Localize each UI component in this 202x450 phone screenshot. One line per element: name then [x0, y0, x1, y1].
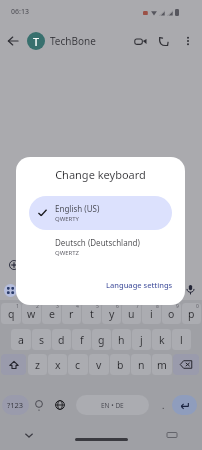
staticText: c	[75, 358, 81, 372]
button[interactable]: c	[68, 354, 88, 375]
button[interactable]: Apps	[4, 284, 17, 297]
staticText: .	[162, 399, 165, 411]
button[interactable]: j	[132, 329, 151, 350]
button[interactable]: i	[142, 303, 161, 324]
button[interactable]: r	[62, 303, 81, 324]
staticText: z	[35, 358, 40, 372]
button[interactable]: l	[172, 329, 191, 350]
button[interactable]: d	[52, 329, 71, 350]
staticText: 4	[76, 303, 79, 310]
button[interactable]: h	[112, 329, 131, 350]
staticText: m	[157, 358, 167, 372]
button[interactable]: k	[152, 329, 171, 350]
button[interactable]: w	[22, 303, 41, 324]
staticText: QWERTZ	[55, 249, 80, 257]
staticText: 7	[136, 303, 139, 310]
staticText: 9	[176, 303, 179, 310]
button[interactable]: Change keyboard	[51, 395, 69, 415]
staticText: 1	[16, 303, 19, 310]
button[interactable]: Back	[0, 28, 26, 54]
button[interactable]: Emoji	[30, 395, 47, 415]
button[interactable]: n	[131, 354, 151, 375]
staticText: QWERTY	[55, 215, 80, 223]
staticText: i	[150, 307, 153, 321]
staticText: t	[90, 307, 94, 321]
staticText: p	[188, 307, 195, 321]
staticText: 06:13	[11, 7, 29, 17]
staticText: d	[58, 333, 65, 347]
staticText: 5	[96, 303, 99, 310]
button[interactable]: e	[42, 303, 61, 324]
button[interactable]: ?123	[2, 395, 29, 415]
button[interactable]: Switch keyboard	[167, 430, 177, 440]
staticText: h	[118, 333, 125, 347]
button[interactable]: Video call	[128, 29, 152, 53]
staticText: Change keyboard	[16, 167, 185, 182]
button[interactable]: u	[122, 303, 141, 324]
staticText: y	[109, 307, 115, 321]
button[interactable]: s	[32, 329, 51, 350]
button[interactable]: v	[89, 354, 109, 375]
staticText: j	[140, 333, 143, 347]
staticText: o	[168, 307, 175, 321]
staticText: 6	[116, 303, 119, 310]
button[interactable]: Deutsch (Deutschland)	[29, 230, 172, 264]
staticText: 3	[56, 303, 59, 310]
button[interactable]: g	[92, 329, 111, 350]
button[interactable]: Hide keyboard	[23, 429, 35, 441]
staticText: g	[98, 333, 105, 347]
staticText: Deutsch (Deutschland)	[55, 237, 140, 248]
staticText: q	[8, 307, 15, 321]
staticText: n	[138, 358, 145, 372]
button[interactable]: EN • DE	[76, 395, 149, 415]
button[interactable]: Backspace	[173, 354, 199, 375]
button[interactable]: Shift	[1, 354, 26, 375]
staticText: f	[80, 333, 84, 347]
button[interactable]: Enter	[172, 395, 197, 415]
staticText: TechBone	[50, 34, 96, 48]
staticText: x	[55, 358, 61, 372]
staticText: Language settings	[106, 280, 173, 290]
button[interactable]: f	[72, 329, 91, 350]
staticText: v	[96, 358, 102, 372]
staticText: ?123	[7, 400, 24, 410]
button[interactable]: a	[11, 329, 31, 350]
staticText: s	[39, 333, 45, 347]
staticText: b	[117, 358, 124, 372]
button[interactable]: t	[82, 303, 101, 324]
staticText: l	[180, 333, 183, 347]
staticText: 2	[36, 303, 39, 310]
staticText: T	[33, 34, 40, 49]
button[interactable]: Call	[152, 29, 176, 53]
button[interactable]: Add	[9, 260, 19, 270]
staticText: 0	[196, 303, 199, 310]
button[interactable]: Language settings	[102, 278, 177, 292]
button[interactable]: o	[162, 303, 181, 324]
button[interactable]: z	[28, 354, 47, 375]
staticText: w	[27, 307, 36, 321]
staticText: a	[18, 333, 24, 347]
staticText: r	[69, 307, 74, 321]
staticText: English (US)	[55, 203, 100, 214]
button[interactable]: y	[102, 303, 121, 324]
button[interactable]: p	[182, 303, 201, 324]
staticText: EN • DE	[101, 401, 124, 410]
button[interactable]: b	[110, 354, 130, 375]
button[interactable]: m	[152, 354, 172, 375]
button[interactable]: Voice input	[185, 284, 196, 295]
staticText: 8	[156, 303, 159, 310]
button[interactable]: q	[1, 303, 21, 324]
staticText: k	[159, 333, 165, 347]
staticText: e	[49, 307, 55, 321]
button[interactable]: More options	[176, 29, 200, 53]
staticText: u	[128, 307, 135, 321]
button[interactable]: x	[48, 354, 67, 375]
button[interactable]: English (US)	[29, 196, 172, 230]
button[interactable]: .	[155, 395, 171, 415]
